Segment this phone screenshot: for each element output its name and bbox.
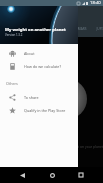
button[interactable]: Qualify in the Play Store [0, 104, 78, 117]
staticText: EARTH MARS JUPITER [58, 27, 103, 31]
button[interactable]: About [0, 47, 78, 60]
button[interactable]: Recents [73, 167, 89, 183]
button[interactable]: Home [44, 167, 60, 183]
staticText: My weight on another planet [4, 11, 67, 17]
staticText: How do we calculate? [24, 64, 62, 69]
staticText: Qualify in the Play Store [24, 108, 66, 113]
staticText: 18:40 [90, 0, 101, 6]
staticText: About [24, 51, 35, 56]
button[interactable]: Back [14, 167, 30, 183]
staticText: Version 1.3.2 [5, 33, 23, 37]
staticText: Others [6, 81, 18, 86]
button[interactable]: How do we calculate? [0, 60, 78, 73]
staticText: My weight on another planet [5, 27, 66, 33]
staticText: Your weight on your planet [60, 144, 103, 149]
button[interactable]: To share [0, 91, 78, 104]
staticText: To share [24, 95, 39, 100]
